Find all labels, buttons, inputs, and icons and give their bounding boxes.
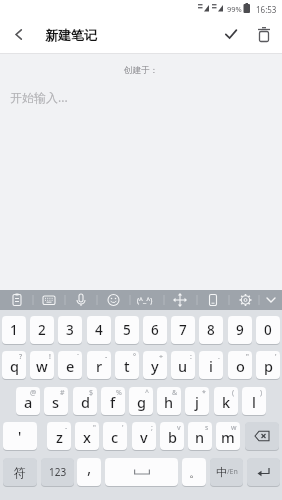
staticText: m	[221, 427, 235, 447]
button[interactable]: 中	[210, 458, 243, 486]
staticText: /En	[227, 467, 238, 477]
button[interactable]: 4	[87, 316, 111, 344]
button[interactable]	[6, 22, 31, 47]
button[interactable]: u	[171, 351, 195, 379]
staticText: °	[133, 352, 136, 362]
button[interactable]: 7	[171, 316, 195, 344]
button[interactable]	[192, 290, 224, 310]
staticText: 123	[49, 465, 67, 479]
button[interactable]: g	[129, 387, 153, 415]
button[interactable]: j	[185, 387, 209, 415]
button[interactable]: o	[228, 351, 252, 379]
button[interactable]	[64, 290, 96, 310]
button[interactable]: s	[44, 387, 68, 415]
button[interactable]	[32, 290, 64, 310]
button[interactable]: 5	[115, 316, 139, 344]
button[interactable]: 3	[58, 316, 82, 344]
staticText: 符	[14, 465, 26, 480]
button[interactable]: x	[75, 422, 99, 450]
button[interactable]: m	[216, 422, 240, 450]
button[interactable]: '	[3, 422, 37, 450]
button[interactable]: 0	[256, 316, 280, 344]
staticText: ?	[19, 352, 23, 362]
staticText: #	[60, 388, 65, 398]
button[interactable]: 符	[3, 458, 37, 486]
staticText: g	[137, 392, 146, 412]
staticText: '	[18, 427, 22, 446]
button[interactable]: k	[214, 387, 238, 415]
button[interactable]	[257, 290, 282, 310]
staticText: d	[81, 392, 90, 412]
button[interactable]: v	[132, 422, 156, 450]
staticText: (	[232, 388, 235, 398]
staticText: 创建于：	[124, 65, 158, 76]
button[interactable]	[224, 290, 256, 310]
staticText: i	[209, 356, 213, 376]
button[interactable]: 1	[2, 316, 26, 344]
button[interactable]: r	[87, 351, 111, 379]
button[interactable]	[0, 290, 32, 310]
button[interactable]: (^_^)	[137, 296, 153, 306]
staticText: 6	[151, 321, 159, 339]
button[interactable]: 123	[41, 458, 74, 486]
button[interactable]: 8	[199, 316, 223, 344]
staticText: v	[177, 423, 181, 433]
button[interactable]	[96, 290, 128, 310]
staticText: e	[66, 356, 75, 376]
staticText: -	[65, 423, 68, 433]
staticText: x	[83, 427, 91, 447]
staticText: 5	[123, 321, 131, 339]
staticText: n	[195, 427, 205, 447]
button[interactable]	[218, 22, 244, 47]
staticText: k	[222, 392, 231, 412]
staticText: 16:53	[256, 4, 277, 15]
staticText: u	[178, 356, 188, 376]
button[interactable]: b	[160, 422, 184, 450]
button[interactable]	[160, 290, 192, 310]
button[interactable]: a	[16, 387, 40, 415]
button[interactable]: w	[30, 351, 54, 379]
button[interactable]	[251, 22, 277, 47]
staticText: 4	[95, 321, 103, 339]
button[interactable]: n	[188, 422, 212, 450]
staticText: f	[110, 392, 116, 412]
button[interactable]: l	[242, 387, 266, 415]
button[interactable]: t	[115, 351, 139, 379]
button[interactable]: 。	[182, 458, 206, 486]
button[interactable]	[247, 458, 280, 486]
button[interactable]: i	[199, 351, 223, 379]
button[interactable]	[128, 290, 160, 310]
button[interactable]: q	[2, 351, 26, 379]
staticText: )	[260, 388, 263, 398]
button[interactable]: p	[256, 351, 280, 379]
button[interactable]: ,	[77, 458, 101, 486]
staticText: t	[124, 356, 130, 376]
staticText: 开始输入...	[10, 89, 68, 105]
button[interactable]: y	[143, 351, 167, 379]
staticText: '	[275, 352, 277, 362]
button[interactable]: 6	[143, 316, 167, 344]
staticText: '	[122, 423, 124, 433]
button[interactable]: z	[47, 422, 71, 450]
staticText: ^	[145, 388, 150, 398]
button[interactable]: c	[103, 422, 127, 450]
staticText: h	[164, 392, 174, 412]
staticText: `	[77, 352, 79, 362]
staticText: r	[96, 356, 103, 376]
staticText: 7	[179, 321, 187, 339]
staticText: w	[36, 356, 48, 376]
button[interactable]	[245, 422, 279, 450]
staticText: s	[52, 392, 60, 412]
button[interactable]: e	[58, 351, 82, 379]
button[interactable]	[105, 458, 178, 486]
staticText: 1	[10, 321, 18, 339]
staticText: l	[252, 392, 256, 412]
button[interactable]: h	[157, 387, 181, 415]
staticText: &	[172, 388, 178, 398]
staticText: -	[105, 352, 108, 362]
button[interactable]: d	[73, 387, 97, 415]
button[interactable]: 9	[228, 316, 252, 344]
button[interactable]: f	[101, 387, 125, 415]
staticText: *	[202, 388, 206, 398]
button[interactable]: 2	[30, 316, 54, 344]
